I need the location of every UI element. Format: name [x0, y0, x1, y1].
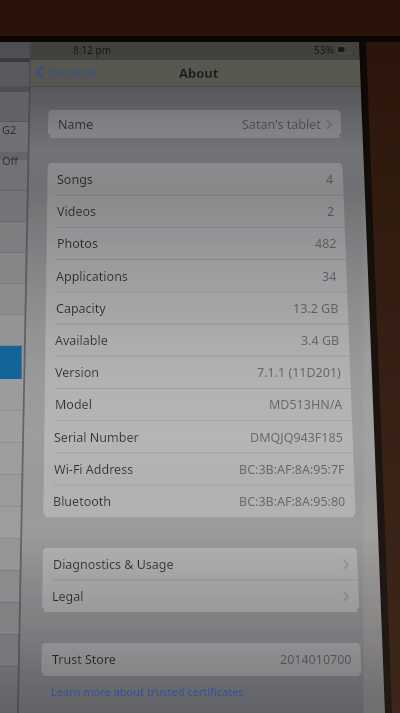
- button[interactable]: Back: [36, 61, 98, 84]
- staticText: Name: [58, 116, 94, 133]
- staticText: 8:12 pm: [73, 43, 112, 57]
- button[interactable]: Learn more about trusted certificates: [51, 683, 244, 700]
- staticText: Videos: [57, 203, 97, 220]
- button[interactable]: Songs: [47, 163, 343, 195]
- button[interactable]: Available: [45, 324, 349, 356]
- staticText: 13.2 GB: [293, 300, 339, 317]
- other: Back: [36, 66, 44, 79]
- button[interactable]: Applications: [46, 260, 346, 292]
- staticText: G2: [2, 122, 17, 137]
- button[interactable]: Serial Number: [44, 421, 352, 453]
- staticText: Off: [2, 153, 19, 168]
- staticText: 53%: [314, 43, 334, 57]
- staticText: Version: [55, 364, 99, 381]
- button[interactable]: Legal: [42, 580, 358, 612]
- staticText: MD513HN/A: [269, 396, 343, 413]
- button[interactable]: Name: [48, 110, 341, 138]
- staticText: 34: [322, 268, 337, 285]
- staticText: 482: [315, 235, 337, 252]
- staticText: Photos: [57, 235, 98, 252]
- button[interactable]: Photos: [47, 227, 346, 259]
- button[interactable]: Off: [2, 152, 19, 168]
- staticText: Available: [55, 332, 108, 349]
- staticText: Diagnostics & Usage: [53, 556, 174, 573]
- staticText: BC:3B:AF:8A:95:80: [239, 493, 346, 510]
- staticText: Songs: [57, 171, 93, 188]
- button[interactable]: Version: [45, 356, 350, 388]
- staticText: BC:3B:AF:8A:95:7F: [239, 461, 345, 478]
- other: Battery: [337, 44, 353, 56]
- button[interactable]: G2: [2, 121, 17, 137]
- staticText: General: [48, 64, 98, 82]
- staticText: Serial Number: [54, 429, 139, 446]
- staticText: Wi-Fi Address: [54, 461, 134, 478]
- staticText: Learn more about trusted certificates: [51, 684, 244, 699]
- staticText: 3.4 GB: [301, 332, 340, 349]
- staticText: Capacity: [56, 300, 106, 317]
- staticText: Legal: [52, 588, 84, 605]
- staticText: 7.1.1 (11D201): [257, 364, 341, 381]
- staticText: 2014010700: [280, 651, 352, 668]
- staticText: 2: [327, 203, 335, 220]
- button[interactable]: Trust Store: [42, 643, 361, 676]
- button[interactable]: Capacity: [46, 292, 348, 324]
- staticText: Model: [55, 396, 92, 413]
- button[interactable]: Model: [45, 388, 352, 420]
- staticText: Trust Store: [52, 651, 116, 668]
- staticText: DMQJQ943F185: [250, 429, 343, 446]
- staticText: Bluetooth: [53, 493, 112, 510]
- button[interactable]: Wi-Fi Address: [44, 453, 354, 485]
- button[interactable]: Videos: [47, 195, 344, 227]
- staticText: Satan's tablet: [242, 116, 321, 133]
- button[interactable]: Bluetooth: [43, 485, 355, 517]
- staticText: 4: [326, 171, 334, 188]
- staticText: Applications: [56, 268, 128, 285]
- button[interactable]: Diagnostics & Usage: [43, 548, 358, 580]
- staticText: About: [179, 64, 219, 82]
